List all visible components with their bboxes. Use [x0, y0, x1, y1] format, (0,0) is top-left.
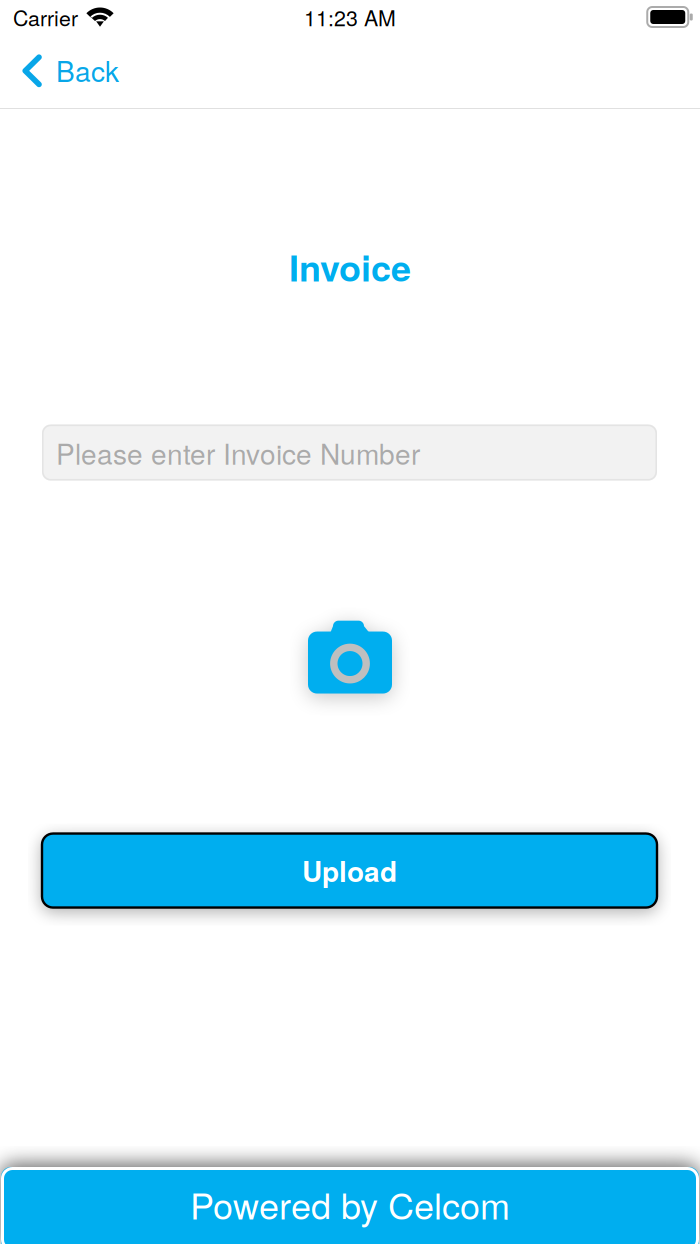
staticText: Upload	[302, 850, 397, 891]
staticText: Back	[56, 50, 119, 90]
staticText: Please enter Invoice Number	[56, 432, 420, 473]
button[interactable]: Back	[0, 34, 137, 108]
button[interactable]: Take photo	[308, 622, 392, 694]
button[interactable]: Upload	[42, 834, 657, 908]
staticText: 11:23 AM	[304, 2, 396, 32]
button[interactable]: Powered by Celcom	[1, 1169, 699, 1244]
staticText: Powered by Celcom	[190, 1178, 510, 1230]
staticText: Carrier	[13, 2, 78, 32]
staticText: Invoice	[289, 241, 411, 293]
